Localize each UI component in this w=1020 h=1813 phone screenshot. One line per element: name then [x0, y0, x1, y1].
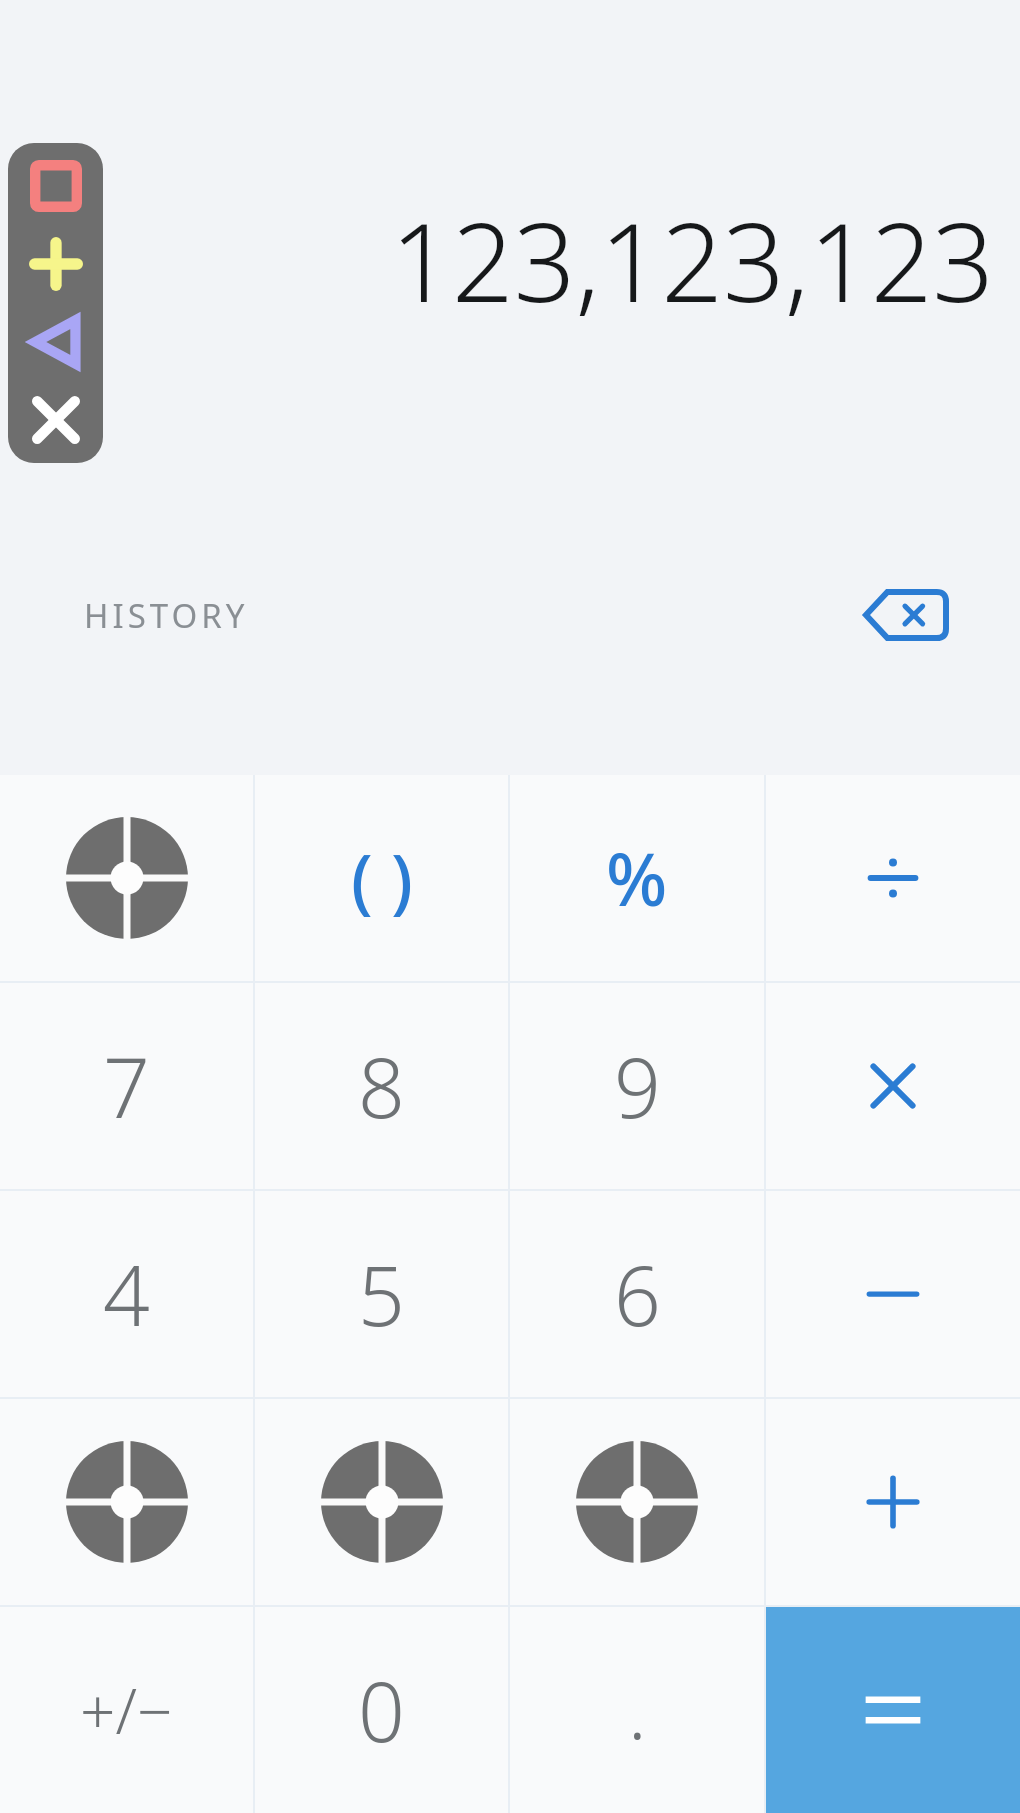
button[interactable]: 7: [0, 983, 253, 1189]
button[interactable]: 5: [255, 1191, 508, 1397]
button[interactable]: Add: [21, 229, 91, 299]
staticText: 1: [103, 1446, 150, 1558]
button[interactable]: 4: [0, 1191, 253, 1397]
button[interactable]: 9: [510, 983, 764, 1189]
button[interactable]: .: [510, 1607, 764, 1813]
staticText: %: [606, 829, 668, 927]
staticText: 123,123,123: [390, 187, 994, 334]
staticText: HISTORY: [84, 593, 249, 638]
button[interactable]: ( ): [255, 775, 508, 981]
button[interactable]: Multiply: [766, 983, 1020, 1189]
staticText: 7: [103, 1030, 150, 1142]
staticText: 2: [358, 1446, 405, 1558]
button[interactable]: 6: [510, 1191, 764, 1397]
button[interactable]: Plus: [766, 1399, 1020, 1605]
staticText: C: [103, 828, 150, 929]
staticText: 0: [358, 1654, 405, 1766]
staticText: 4: [103, 1238, 150, 1350]
staticText: 8: [358, 1030, 405, 1142]
button[interactable]: HISTORY: [80, 585, 253, 646]
button[interactable]: Stop: [21, 151, 91, 221]
staticText: 5: [358, 1238, 405, 1350]
button[interactable]: 2: [255, 1399, 508, 1605]
button[interactable]: 8: [255, 983, 508, 1189]
staticText: 3: [614, 1446, 661, 1558]
staticText: .: [628, 1658, 647, 1762]
button[interactable]: Minus: [766, 1191, 1020, 1397]
staticText: ( ): [351, 831, 413, 926]
staticText: +/−: [80, 1668, 173, 1752]
button[interactable]: Divide: [766, 775, 1020, 981]
button[interactable]: +/−: [0, 1607, 253, 1813]
button[interactable]: %: [510, 775, 764, 981]
button[interactable]: 0: [255, 1607, 508, 1813]
button[interactable]: Backspace: [850, 575, 960, 655]
button[interactable]: Close: [21, 385, 91, 455]
button[interactable]: 3: [510, 1399, 764, 1605]
button[interactable]: 1: [0, 1399, 253, 1605]
staticText: 6: [614, 1238, 661, 1350]
button[interactable]: Equals: [766, 1607, 1020, 1813]
button[interactable]: C: [0, 775, 253, 981]
staticText: 9: [614, 1030, 661, 1142]
button[interactable]: Back: [21, 307, 91, 377]
